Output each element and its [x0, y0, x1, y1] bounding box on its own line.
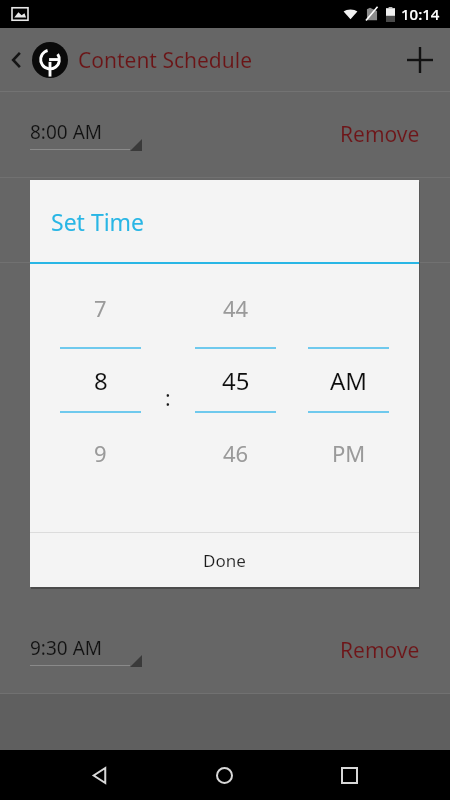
staticText: Remove — [340, 120, 420, 149]
staticText: 46 — [223, 438, 249, 468]
button[interactable]: Recent apps — [325, 751, 373, 799]
staticText: 10:14 — [401, 4, 440, 24]
staticText: Content Schedule — [78, 46, 252, 75]
button[interactable]: 8:00 AM — [30, 119, 130, 150]
staticText: Remove — [340, 636, 420, 665]
staticText: 8 — [94, 364, 108, 397]
button[interactable]: 7 — [44, 264, 157, 532]
staticText: 9 — [94, 438, 107, 468]
button[interactable]: AM — [292, 264, 405, 532]
staticText: : — [165, 384, 171, 413]
staticText: AM — [330, 364, 368, 397]
staticText: 44 — [223, 293, 249, 323]
button[interactable]: 9:30 AM — [30, 635, 130, 666]
button[interactable]: Back — [6, 49, 28, 71]
button[interactable]: Add — [400, 40, 440, 80]
button[interactable]: 9:30 AM — [0, 608, 450, 693]
button[interactable]: Back — [76, 751, 124, 799]
staticText: 9:30 AM — [30, 635, 103, 661]
other: App logo — [32, 42, 68, 78]
staticText: PM — [332, 438, 366, 468]
button[interactable]: Done — [30, 533, 419, 587]
staticText: Done — [203, 549, 246, 572]
staticText: 7 — [94, 293, 107, 323]
button[interactable]: 8:00 AM — [0, 92, 450, 177]
staticText: 8:00 AM — [30, 119, 103, 145]
button[interactable]: Remove — [340, 120, 450, 149]
button[interactable]: 44 — [179, 264, 292, 532]
staticText: 45 — [222, 364, 250, 397]
button[interactable]: Home — [200, 751, 248, 799]
button[interactable]: Remove — [340, 636, 450, 665]
staticText: Set Time — [51, 206, 145, 237]
